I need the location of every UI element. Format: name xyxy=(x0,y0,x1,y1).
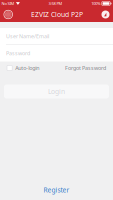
staticText: Login xyxy=(48,87,65,96)
staticText: No SIM xyxy=(1,1,14,6)
staticText: Register xyxy=(43,186,69,194)
staticText: Auto-login xyxy=(15,64,39,72)
button[interactable]: Forgot Password xyxy=(65,61,113,74)
staticText: User Name/Email xyxy=(6,33,49,40)
staticText: EZVIZ Cloud P2P xyxy=(31,10,83,19)
button[interactable]: Auto-login xyxy=(0,61,39,74)
staticText: 3:58 PM xyxy=(49,1,63,6)
staticText: 100% xyxy=(91,1,100,6)
button[interactable]: Login xyxy=(4,84,109,98)
button[interactable]: Register xyxy=(0,184,113,196)
staticText: Forgot Password xyxy=(65,64,106,72)
button[interactable]: Select region xyxy=(0,7,13,22)
button[interactable]: Help xyxy=(101,7,113,22)
staticText: Password xyxy=(6,50,30,57)
